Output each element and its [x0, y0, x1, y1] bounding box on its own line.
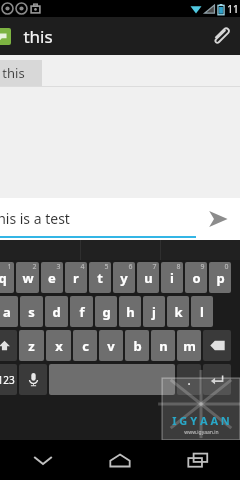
staticText: ?123 — [0, 373, 15, 387]
button[interactable]: . — [177, 364, 201, 395]
button[interactable]: v — [99, 330, 123, 361]
staticText: I G Y A A N — [172, 413, 230, 428]
staticText: this — [2, 64, 25, 82]
staticText: 8 — [176, 262, 181, 272]
staticText: t — [97, 269, 103, 287]
staticText: 0 — [224, 262, 229, 272]
button[interactable]: n — [151, 330, 175, 361]
button[interactable]: f — [70, 296, 93, 327]
staticText: www.igyaan.in — [184, 429, 219, 436]
button[interactable]: ?123 — [0, 364, 17, 395]
button[interactable]: Recents — [163, 440, 233, 480]
staticText: 4 — [80, 262, 85, 272]
staticText: p — [216, 269, 225, 287]
staticText: j — [152, 303, 156, 321]
staticText: this — [23, 25, 53, 48]
button[interactable]: Backspace — [203, 330, 231, 361]
staticText: v — [107, 337, 115, 355]
staticText: h — [126, 303, 135, 321]
button[interactable]: Home — [85, 440, 155, 480]
button[interactable]: this is a test — [0, 198, 196, 240]
button[interactable]: g — [95, 296, 117, 327]
staticText: y — [120, 269, 128, 287]
staticText: z — [28, 337, 35, 355]
button[interactable]: this — [0, 17, 240, 55]
staticText: l — [200, 303, 204, 321]
button[interactable]: p — [209, 262, 231, 293]
staticText: m — [183, 337, 196, 355]
staticText: q — [0, 269, 7, 287]
staticText: 9 — [200, 262, 205, 272]
staticText: 2 — [32, 262, 37, 272]
staticText: 3 — [56, 262, 61, 272]
button[interactable]: this — [0, 60, 42, 86]
staticText: o — [192, 269, 201, 287]
button[interactable]: k — [167, 296, 189, 327]
button[interactable]: Voice input — [19, 364, 47, 395]
staticText: a — [3, 303, 11, 321]
button[interactable]: l — [191, 296, 213, 327]
button[interactable]: e — [41, 262, 63, 293]
staticText: i — [170, 269, 174, 287]
button[interactable]: Enter — [203, 364, 231, 395]
button[interactable]: r — [65, 262, 87, 293]
button[interactable]: b — [125, 330, 149, 361]
button[interactable]: t — [89, 262, 111, 293]
staticText: 11 — [227, 2, 239, 16]
staticText: d — [52, 303, 61, 321]
staticText: 1 — [7, 262, 12, 272]
staticText: u — [144, 269, 153, 287]
button[interactable]: m — [177, 330, 201, 361]
staticText: x — [55, 337, 63, 355]
button[interactable]: q — [0, 262, 14, 293]
button[interactable]: d — [45, 296, 68, 327]
button[interactable]: x — [46, 330, 71, 361]
staticText: e — [48, 269, 56, 287]
staticText: . — [187, 372, 191, 388]
staticText: s — [28, 303, 35, 321]
button[interactable]: u — [137, 262, 159, 293]
button[interactable]: j — [143, 296, 165, 327]
button[interactable]: Shift — [0, 330, 17, 361]
button[interactable]: Attach — [202, 17, 240, 55]
staticText: this is a test — [0, 209, 70, 228]
staticText: f — [79, 303, 85, 321]
staticText: g — [102, 303, 111, 321]
button[interactable]: Space — [49, 364, 175, 395]
staticText: c — [82, 337, 89, 355]
button[interactable]: i — [161, 262, 183, 293]
button[interactable]: w — [16, 262, 39, 293]
staticText: 5 — [104, 262, 109, 272]
button[interactable]: h — [119, 296, 141, 327]
button[interactable]: Hide keyboard — [8, 440, 78, 480]
button[interactable]: y — [113, 262, 135, 293]
staticText: k — [174, 303, 183, 321]
staticText: b — [133, 337, 142, 355]
button[interactable]: c — [73, 330, 97, 361]
button[interactable]: o — [185, 262, 207, 293]
staticText: n — [159, 337, 168, 355]
staticText: w — [22, 269, 34, 287]
button[interactable]: z — [19, 330, 44, 361]
button[interactable]: a — [0, 296, 18, 327]
staticText: 6 — [128, 262, 133, 272]
button[interactable]: s — [20, 296, 43, 327]
staticText: r — [73, 269, 79, 287]
button[interactable]: Send — [196, 198, 240, 240]
staticText: 7 — [152, 262, 157, 272]
